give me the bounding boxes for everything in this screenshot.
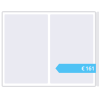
staticText: € 161: [81, 65, 94, 72]
